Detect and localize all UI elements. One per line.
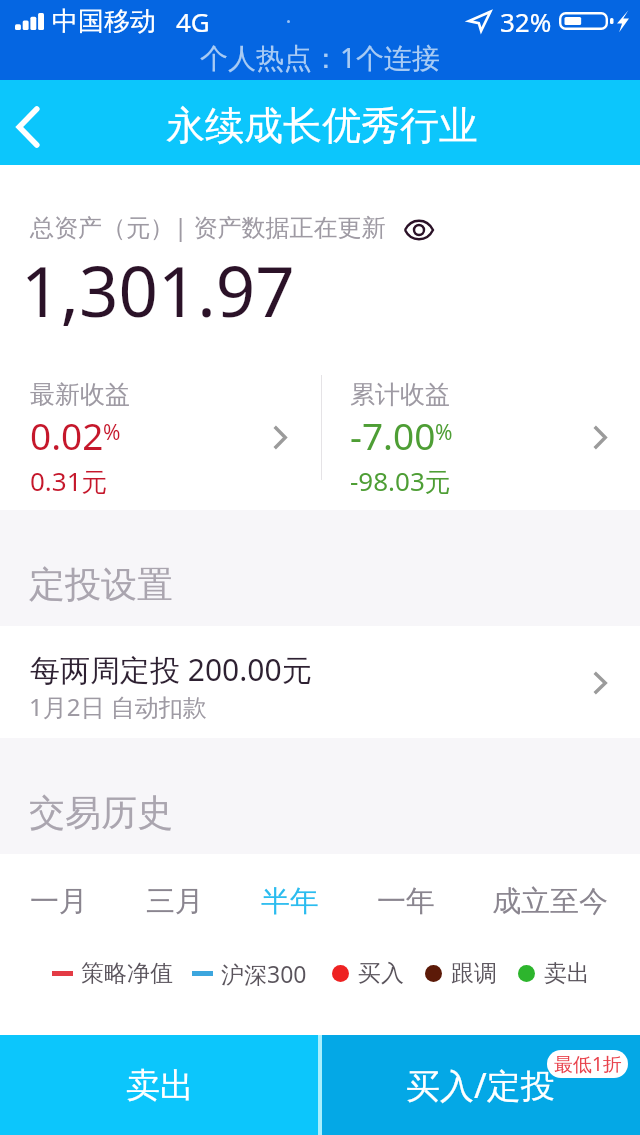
- staticText: 永续成长优秀行业: [166, 101, 478, 150]
- staticText: 成立至今: [492, 883, 608, 920]
- staticText: 三月: [146, 883, 204, 920]
- staticText: 半年: [261, 883, 319, 920]
- staticText: 交易历史: [29, 790, 173, 835]
- staticText: 1,301.97: [21, 243, 295, 337]
- staticText: %: [103, 418, 121, 447]
- staticText: %: [435, 418, 453, 447]
- staticText: 买入: [358, 959, 404, 988]
- staticText: 一年: [377, 883, 435, 920]
- button[interactable]: 一年: [371, 864, 441, 938]
- staticText: 沪深300: [221, 958, 307, 989]
- staticText: 一月: [30, 883, 88, 920]
- staticText: -7.00: [350, 410, 436, 460]
- button[interactable]: 最新收益: [0, 370, 320, 510]
- staticText: 4G: [176, 4, 210, 39]
- button[interactable]: 卖出: [0, 1035, 320, 1135]
- staticText: 1月2日 自动扣款: [29, 690, 207, 723]
- button[interactable]: 成立至今: [486, 864, 614, 938]
- staticText: 每两周定投 200.00元: [30, 649, 312, 690]
- staticText: 卖出: [544, 959, 590, 988]
- staticText: 32%: [500, 4, 552, 39]
- button[interactable]: Back: [0, 84, 56, 169]
- staticText: 最新收益: [30, 379, 130, 410]
- button[interactable]: 每两周定投 200.00元: [0, 626, 640, 738]
- button[interactable]: 累计收益: [320, 370, 640, 510]
- staticText: 个人热点：1个连接: [200, 38, 441, 76]
- staticText: 策略净值: [81, 959, 173, 988]
- staticText: 定投设置: [29, 562, 173, 607]
- staticText: 0.02: [30, 410, 104, 460]
- staticText: 中国移动: [52, 5, 156, 38]
- staticText: 买入/定投: [406, 1062, 555, 1108]
- staticText: 卖出: [126, 1064, 194, 1107]
- staticText: 跟调: [451, 959, 497, 988]
- staticText: 累计收益: [350, 379, 450, 410]
- staticText: -98.03元: [350, 463, 451, 499]
- staticText: 0.31元: [30, 463, 108, 499]
- staticText: 最低1折: [554, 1051, 622, 1077]
- button[interactable]: 买入/定投: [320, 1035, 640, 1135]
- staticText: 总资产（元）| 资产数据正在更新: [30, 210, 386, 243]
- button[interactable]: 三月: [140, 864, 210, 938]
- button[interactable]: Toggle balance visibility: [401, 215, 437, 245]
- button[interactable]: 一月: [24, 864, 94, 938]
- button[interactable]: 半年: [255, 864, 325, 938]
